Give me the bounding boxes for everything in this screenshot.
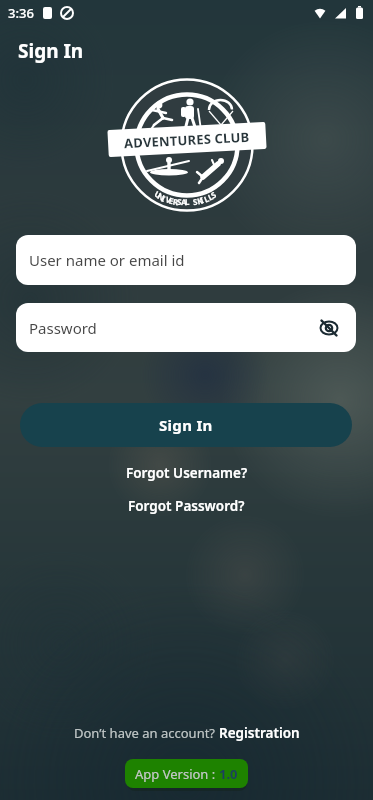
button[interactable]: Forgot Username? <box>126 464 248 482</box>
staticText: R <box>172 196 180 207</box>
staticText: Sign In <box>18 38 84 64</box>
staticText: ADVENTURES CLUB <box>124 128 250 152</box>
staticText: Forgot Password? <box>128 497 245 515</box>
staticText: 3:36 <box>8 4 34 22</box>
button[interactable]: User name or email id <box>16 235 356 285</box>
staticText: K <box>196 194 204 207</box>
staticText: S <box>192 196 199 207</box>
button[interactable]: App Version : <box>135 759 238 788</box>
button[interactable]: Forgot Password? <box>128 497 245 515</box>
staticText: V <box>164 193 173 206</box>
staticText: Registration <box>219 724 300 742</box>
button[interactable]: Sign In <box>20 403 352 447</box>
staticText: User name or email id <box>29 250 185 270</box>
staticText: I <box>160 193 168 204</box>
staticText: E <box>168 195 175 206</box>
button[interactable]: Don’t have an account? <box>74 724 300 742</box>
staticText: N <box>156 190 167 203</box>
staticText: L <box>206 190 215 203</box>
staticText: Password <box>29 318 97 338</box>
staticText: Sign In <box>159 415 213 435</box>
staticText: App Version : <box>135 765 219 783</box>
staticText: Forgot Username? <box>126 464 248 482</box>
staticText: Don’t have an account? <box>74 724 219 742</box>
staticText: I <box>198 194 205 205</box>
staticText: L <box>185 196 190 207</box>
staticText: S <box>176 196 183 207</box>
staticText: L <box>202 192 211 205</box>
staticText: S <box>209 188 218 200</box>
staticText: A <box>181 196 187 207</box>
button[interactable]: Password <box>16 303 356 352</box>
staticText: 1.0 <box>219 765 238 783</box>
staticText: U <box>153 188 164 201</box>
